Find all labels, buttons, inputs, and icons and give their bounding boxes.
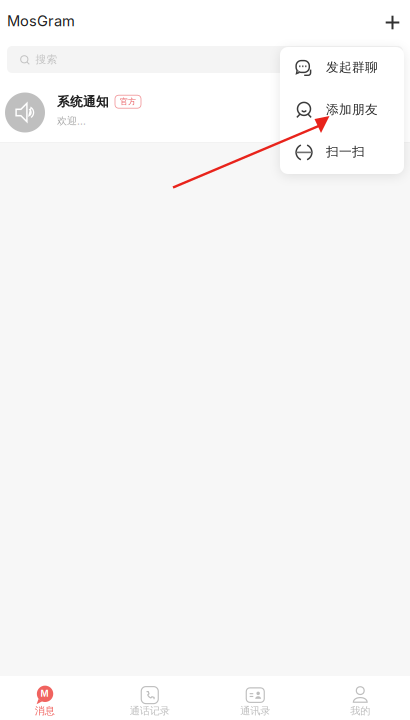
button[interactable]: 通话记录 bbox=[98, 676, 201, 720]
staticText: MosGram bbox=[7, 12, 75, 30]
staticText: 发起群聊 bbox=[326, 59, 378, 75]
button[interactable]: 扫一扫 bbox=[280, 132, 404, 174]
staticText: 官方 bbox=[120, 97, 136, 107]
staticText: 通话记录 bbox=[130, 705, 170, 717]
button[interactable]: 搜索 bbox=[0, 42, 410, 78]
button[interactable]: 通讯录 bbox=[204, 676, 306, 720]
staticText: 系统通知 bbox=[57, 94, 109, 110]
staticText: 通讯录 bbox=[240, 705, 270, 717]
button[interactable]: 添加朋友 bbox=[280, 89, 404, 132]
button[interactable]: 我的 bbox=[309, 676, 410, 720]
button[interactable]: M bbox=[0, 676, 96, 720]
button[interactable]: New chat bbox=[377, 6, 407, 36]
staticText: 扫一扫 bbox=[326, 144, 365, 160]
staticText: 添加朋友 bbox=[326, 101, 378, 117]
button[interactable]: 系统通知 bbox=[0, 78, 410, 143]
staticText: 消息 bbox=[35, 705, 55, 717]
staticText: 我的 bbox=[350, 705, 370, 717]
staticText: 欢迎... bbox=[57, 115, 86, 127]
staticText: 搜索 bbox=[35, 53, 57, 66]
staticText: M bbox=[40, 688, 48, 699]
button[interactable]: 发起群聊 bbox=[280, 47, 404, 89]
